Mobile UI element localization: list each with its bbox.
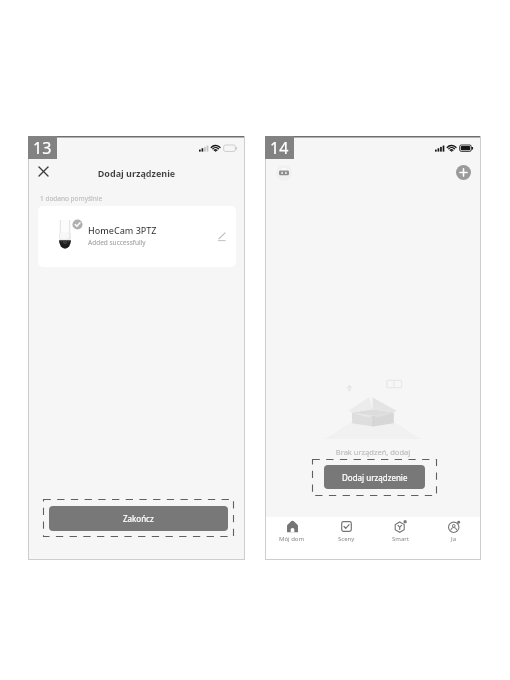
button[interactable]: Ja: [427, 517, 481, 545]
button[interactable]: Mój dom: [265, 517, 319, 545]
staticText: HomeCam 3PTZ: [88, 224, 157, 236]
button[interactable]: Dodaj urządzenie: [324, 465, 425, 489]
button[interactable]: Close: [33, 161, 54, 182]
staticText: 1 dodano pomyślnie: [40, 194, 103, 203]
button[interactable]: Home: [273, 162, 295, 184]
staticText: Dodaj urządzenie: [342, 472, 408, 483]
button[interactable]: HomeCam 3PTZ: [38, 206, 236, 267]
staticText: Sceny: [338, 535, 355, 543]
staticText: Brak urządzeń, dodaj: [265, 447, 481, 457]
staticText: Dodaj urządzenie: [28, 167, 245, 179]
staticText: Smart: [392, 535, 409, 543]
button[interactable]: Zakończ: [49, 506, 228, 531]
staticText: Mój dom: [279, 535, 305, 543]
staticText: Zakończ: [123, 513, 154, 524]
button[interactable]: Smart: [373, 517, 427, 545]
staticText: Ja: [451, 535, 457, 543]
staticText: 14: [270, 137, 289, 159]
button[interactable]: Add device: [452, 161, 474, 183]
staticText: Added successfully: [88, 238, 146, 247]
staticText: 13: [33, 137, 52, 159]
button[interactable]: Sceny: [319, 517, 373, 545]
